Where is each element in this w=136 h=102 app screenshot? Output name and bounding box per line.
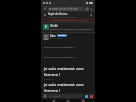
staticText: je suis vraiment une femme ?? bbox=[44, 46, 75, 49]
staticText: je suis vraiment une femme !!! bbox=[44, 56, 75, 59]
staticText: — bbox=[44, 41, 47, 44]
button[interactable]: Recent apps bbox=[81, 99, 85, 102]
button[interactable]: Tabs bbox=[85, 7, 89, 11]
staticText: 12 messages · 3 participants bbox=[48, 16, 76, 18]
button[interactable]: V bbox=[41, 23, 95, 32]
staticText: Alice bbox=[50, 34, 56, 37]
button[interactable]: More options bbox=[89, 7, 93, 11]
staticText: a répondu bbox=[44, 78, 54, 81]
staticText: Membre bbox=[58, 34, 66, 37]
staticText: — bbox=[44, 61, 47, 64]
staticText: je suis vraiment une femme ! bbox=[44, 82, 84, 93]
button[interactable]: Home bbox=[66, 99, 70, 102]
staticText: V bbox=[45, 25, 47, 29]
staticText: Réponse du modérateur au sujet signalé bbox=[50, 28, 92, 31]
staticText: je suis vraiment une femme ! bbox=[44, 66, 84, 77]
button[interactable]: Back bbox=[43, 13, 47, 17]
staticText: www.forum.fr/thread bbox=[52, 7, 78, 11]
button[interactable]: Back bbox=[43, 6, 48, 11]
staticText: — bbox=[44, 51, 47, 54]
button[interactable]: Attention : ce message a été signalé bbox=[41, 18, 95, 22]
staticText: Attention : ce message a été signalé bbox=[50, 19, 87, 22]
button[interactable]: www.forum.fr/thread bbox=[48, 7, 84, 11]
button[interactable]: Send bbox=[84, 94, 88, 98]
staticText: Répondre… bbox=[49, 95, 61, 98]
staticText: Vérifié bbox=[50, 24, 58, 27]
button[interactable]: Répondre… bbox=[48, 94, 83, 98]
button[interactable]: Report bbox=[89, 94, 93, 98]
button[interactable]: Alice bbox=[41, 33, 95, 93]
button[interactable]: Back bbox=[52, 99, 56, 102]
staticText: il y a 2 heures bbox=[50, 37, 63, 40]
staticText: Sujet du forum bbox=[48, 12, 68, 16]
button[interactable]: Share bbox=[89, 13, 93, 17]
